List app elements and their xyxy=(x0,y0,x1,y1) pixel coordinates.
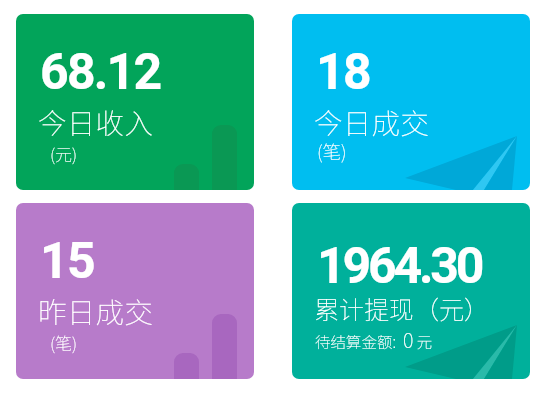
staticText: 1964.30 xyxy=(317,237,482,296)
staticText: 累计提现（元） xyxy=(314,290,490,326)
button[interactable]: 68.12 xyxy=(16,14,254,190)
staticText: 15 xyxy=(40,232,94,291)
staticText: 今日收入 xyxy=(38,101,154,142)
staticText: (笔) xyxy=(317,138,347,165)
button[interactable]: 15 xyxy=(16,203,254,379)
staticText: 待结算金额: 0 元 xyxy=(315,325,433,354)
staticText: 68.12 xyxy=(40,43,161,102)
button[interactable]: 18 xyxy=(292,14,530,190)
staticText: 今日成交 xyxy=(314,101,430,142)
staticText: (元) xyxy=(50,141,78,166)
button[interactable]: 1964.30 xyxy=(292,203,530,379)
staticText: (笔) xyxy=(50,330,78,355)
staticText: 18 xyxy=(316,43,370,102)
staticText: 昨日成交 xyxy=(38,290,154,331)
